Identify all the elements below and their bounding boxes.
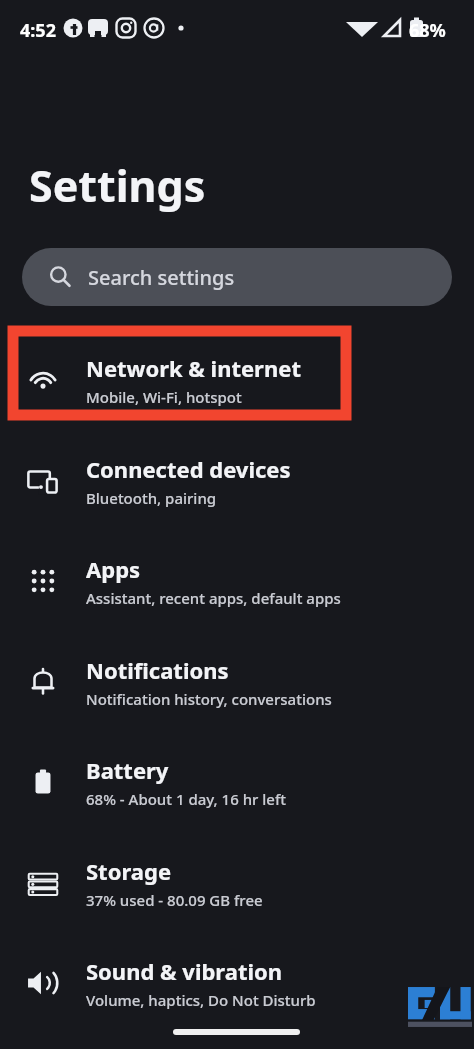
button[interactable]: Search settings <box>22 248 452 306</box>
staticText: Search settings <box>88 264 235 291</box>
button[interactable]: Network & internet <box>0 341 474 419</box>
staticText: Storage <box>86 856 172 886</box>
staticText: 4:52 <box>20 18 56 43</box>
staticText: Volume, haptics, Do Not Disturb <box>86 990 316 1010</box>
button[interactable]: Storage <box>0 844 474 922</box>
staticText: Notification history, conversations <box>86 689 332 709</box>
staticText: Network & internet <box>86 353 301 383</box>
staticText: Notifications <box>86 655 229 685</box>
staticText: Apps <box>86 554 141 584</box>
staticText: Settings <box>29 156 206 215</box>
button[interactable]: Sound & vibration <box>0 944 474 1022</box>
staticText: Sound & vibration <box>86 956 283 986</box>
staticText: Assistant, recent apps, default apps <box>86 588 341 608</box>
staticText: Connected devices <box>86 454 291 484</box>
button[interactable]: Connected devices <box>0 442 474 520</box>
button[interactable]: Notifications <box>0 643 474 721</box>
button[interactable]: Battery <box>0 743 474 821</box>
staticText: 68% <box>409 18 446 43</box>
staticText: Bluetooth, pairing <box>86 488 217 508</box>
staticText: 37% used - 80.09 GB free <box>86 890 263 910</box>
button[interactable]: Apps <box>0 542 474 620</box>
staticText: 68% - About 1 day, 16 hr left <box>86 789 287 809</box>
staticText: Battery <box>86 755 169 785</box>
staticText: Mobile, Wi-Fi, hotspot <box>86 387 242 407</box>
